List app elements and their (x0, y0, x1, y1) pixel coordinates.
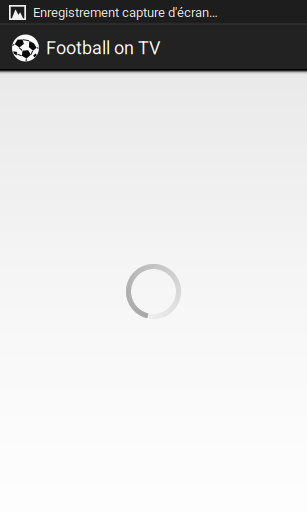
staticText: Football on TV (46, 37, 160, 59)
staticText: Enregistrement capture d'écran… (33, 5, 218, 20)
button[interactable]: Football on TV (0, 25, 307, 69)
